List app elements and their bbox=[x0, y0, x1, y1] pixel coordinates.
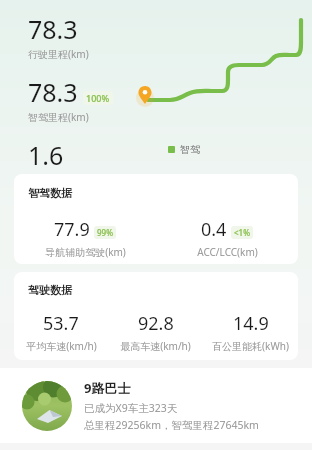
staticText: 百公里能耗(kWh) bbox=[212, 339, 289, 353]
staticText: 平均车速(km/h) bbox=[26, 339, 97, 353]
staticText: 智驾里程(km) bbox=[28, 110, 89, 124]
staticText: 14.9 bbox=[233, 311, 269, 336]
staticText: 0.4 bbox=[201, 217, 227, 242]
staticText: ACC/LCC(km) bbox=[197, 245, 258, 259]
button[interactable]: 智驾数据 bbox=[14, 174, 298, 264]
staticText: 总里程29256km，智驾里程27645km bbox=[84, 418, 259, 432]
staticText: 78.3 bbox=[28, 12, 78, 46]
staticText: 77.9 bbox=[54, 217, 90, 242]
staticText: 已成为X9车主323天 bbox=[84, 401, 178, 415]
staticText: 53.7 bbox=[43, 311, 79, 336]
staticText: 智驾数据 bbox=[28, 186, 72, 200]
staticText: 行驶里程(km) bbox=[28, 47, 89, 61]
staticText: 99% bbox=[97, 227, 113, 238]
staticText: 78.3 bbox=[28, 75, 78, 109]
staticText: 9路巴士 bbox=[84, 379, 131, 397]
staticText: 100% bbox=[86, 92, 110, 104]
staticText: <1% bbox=[234, 227, 250, 238]
staticText: 最高车速(km/h) bbox=[120, 339, 191, 353]
button[interactable]: 9路巴士 bbox=[0, 368, 312, 443]
staticText: 导航辅助驾驶(km) bbox=[45, 245, 126, 259]
staticText: 驾驶数据 bbox=[28, 283, 72, 297]
staticText: 1.6 bbox=[28, 138, 64, 170]
staticText: 92.8 bbox=[138, 311, 174, 336]
button[interactable]: 驾驶数据 bbox=[14, 272, 298, 360]
staticText: 智驾 bbox=[180, 143, 200, 156]
